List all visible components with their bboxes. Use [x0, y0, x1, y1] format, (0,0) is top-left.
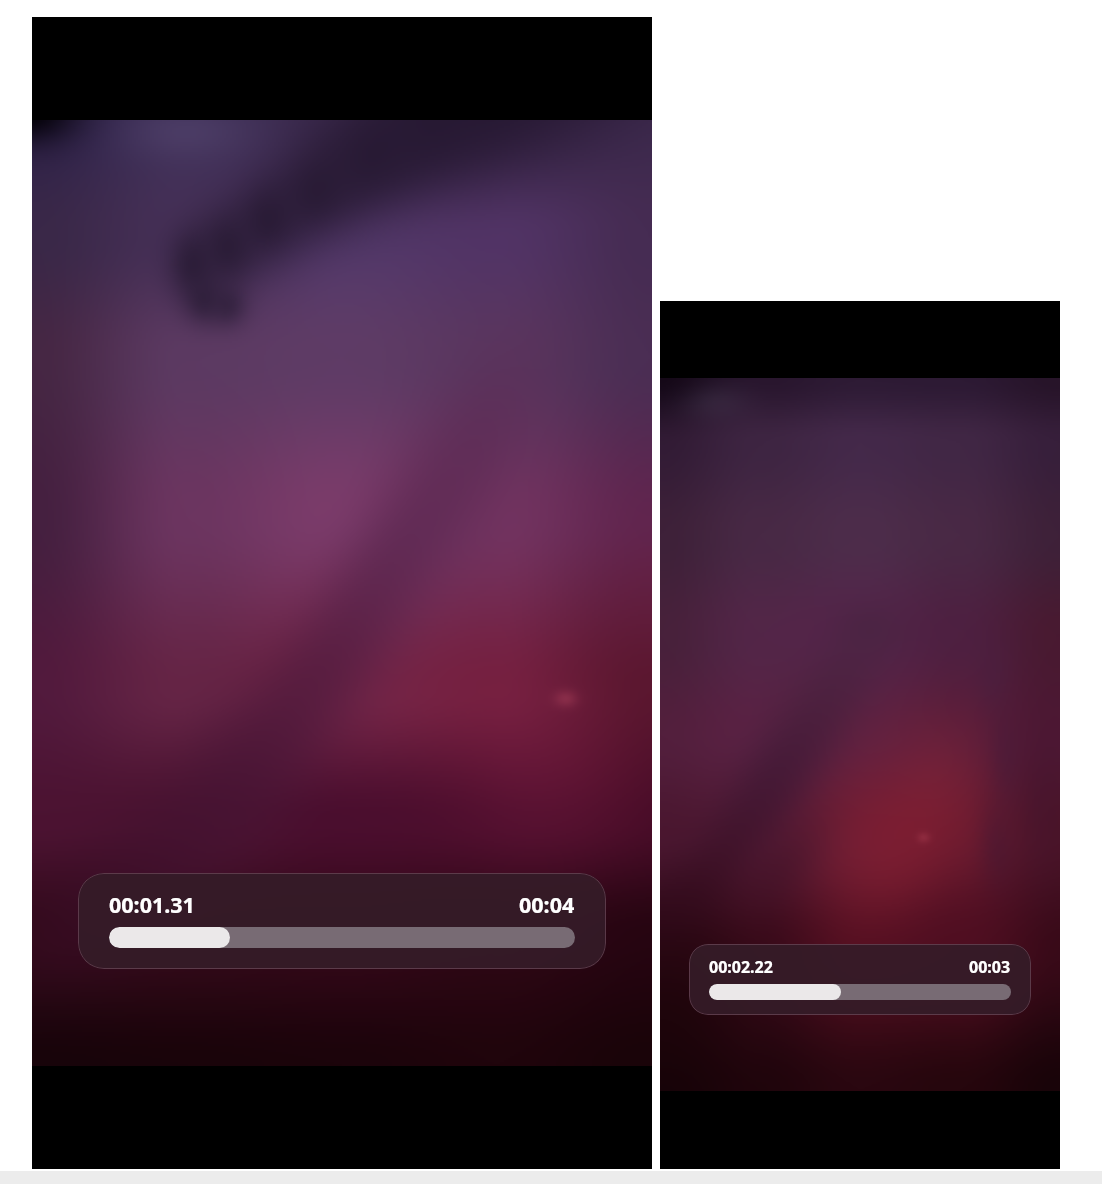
staticText: 00:03 [969, 956, 1011, 978]
staticText: 00:04 [519, 890, 575, 919]
button[interactable]: 00:02.22 [689, 944, 1031, 1015]
button[interactable]: 00:01.31 [78, 873, 606, 969]
staticText: 00:02.22 [709, 956, 773, 978]
staticText: 00:01.31 [109, 890, 195, 919]
